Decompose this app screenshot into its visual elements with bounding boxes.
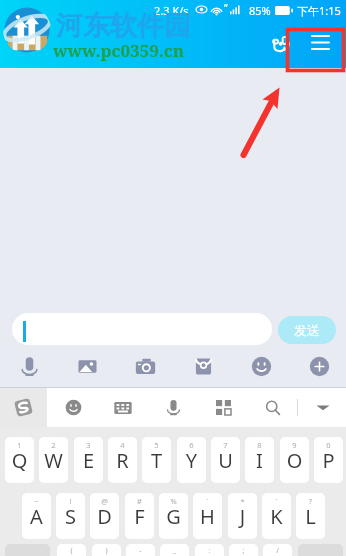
- button[interactable]: 5: [142, 437, 171, 483]
- staticText: ~: [22, 496, 51, 506]
- button[interactable]: *: [228, 493, 257, 539]
- button[interactable]: ´: [262, 493, 291, 539]
- button[interactable]: ?: [296, 493, 325, 539]
- staticText: 2.3 K/s: [154, 3, 189, 18]
- staticText: 4: [108, 440, 137, 450]
- staticText: U: [211, 447, 240, 474]
- button[interactable]: @: [90, 493, 119, 539]
- staticText: D: [90, 503, 119, 530]
- staticText: 0: [314, 440, 343, 450]
- button[interactable]: Emoji: [244, 349, 278, 383]
- staticText: 河东软件园: [56, 9, 191, 43]
- button[interactable]: ;: [229, 544, 258, 556]
- staticText: T: [142, 447, 171, 474]
- button[interactable]: :: [195, 544, 224, 556]
- button[interactable]: ): [92, 544, 121, 556]
- staticText: 7: [211, 440, 240, 450]
- button[interactable]: Sogou input: [0, 388, 47, 427]
- button[interactable]: Keyboard: [101, 388, 145, 427]
- staticText: 3: [74, 440, 103, 450]
- button[interactable]: %: [159, 493, 188, 539]
- staticText: “: [224, 1, 228, 15]
- staticText: :: [195, 546, 224, 556]
- staticText: 9: [280, 440, 309, 450]
- staticText: #: [125, 496, 154, 506]
- staticText: 下午1:15: [297, 3, 341, 18]
- staticText: L: [296, 503, 325, 530]
- button[interactable]: _: [160, 544, 189, 556]
- staticText: G: [159, 503, 188, 530]
- staticText: 2: [39, 440, 68, 450]
- button[interactable]: -: [126, 544, 155, 556]
- button[interactable]: Photo: [70, 349, 104, 383]
- button[interactable]: Apps: [201, 388, 245, 427]
- staticText: ;: [229, 546, 258, 556]
- staticText: J: [228, 503, 257, 530]
- button[interactable]: 发送: [278, 316, 336, 344]
- staticText: %: [159, 496, 188, 506]
- staticText: S: [56, 503, 85, 530]
- staticText: /: [263, 546, 292, 556]
- button[interactable]: Voice message: [12, 349, 46, 383]
- staticText: ): [92, 546, 121, 556]
- button[interactable]: 4: [108, 437, 137, 483]
- button[interactable]: 7: [211, 437, 240, 483]
- staticText: www.pc0359.cn: [53, 39, 185, 62]
- staticText: Y: [177, 447, 206, 474]
- button[interactable]: Gift: [186, 349, 220, 383]
- button[interactable]: 9: [280, 437, 309, 483]
- button[interactable]: Menu: [300, 22, 341, 63]
- button[interactable]: 1: [5, 437, 34, 483]
- button[interactable]: Hide keyboard: [301, 388, 345, 427]
- button[interactable]: (: [57, 544, 86, 556]
- staticText: P: [314, 447, 343, 474]
- staticText: @: [90, 496, 119, 506]
- button[interactable]: 3: [74, 437, 103, 483]
- staticText: 1: [5, 440, 34, 450]
- button[interactable]: /: [263, 544, 292, 556]
- button[interactable]: Message input: [12, 313, 272, 345]
- staticText: E: [74, 447, 103, 474]
- staticText: K: [262, 503, 291, 530]
- button[interactable]: Voice input: [151, 388, 195, 427]
- button[interactable]: #: [125, 493, 154, 539]
- button[interactable]: Emoji: [51, 388, 95, 427]
- button[interactable]: Camera: [128, 349, 162, 383]
- button[interactable]: 0: [314, 437, 343, 483]
- button[interactable]: 6: [177, 437, 206, 483]
- staticText: I: [245, 447, 274, 474]
- staticText: ´: [193, 496, 222, 506]
- staticText: 85%: [249, 3, 271, 18]
- staticText: (: [57, 546, 86, 556]
- staticText: -: [126, 546, 155, 556]
- button[interactable]: ´: [193, 493, 222, 539]
- staticText: W: [39, 447, 68, 474]
- staticText: R: [108, 447, 137, 474]
- staticText: 5: [142, 440, 171, 450]
- button[interactable]: Voice call: [261, 24, 301, 64]
- staticText: *: [228, 496, 257, 506]
- staticText: F: [125, 503, 154, 530]
- button[interactable]: ~: [22, 493, 51, 539]
- button[interactable]: More: [302, 349, 336, 383]
- staticText: Q: [5, 447, 34, 474]
- staticText: ?: [296, 496, 325, 506]
- staticText: O: [280, 447, 309, 474]
- button[interactable]: !: [56, 493, 85, 539]
- staticText: 发送: [294, 322, 320, 338]
- button[interactable]: 2: [39, 437, 68, 483]
- staticText: H: [193, 503, 222, 530]
- button[interactable]: 8: [245, 437, 274, 483]
- staticText: 8: [245, 440, 274, 450]
- staticText: !: [56, 496, 85, 506]
- staticText: A: [22, 503, 51, 530]
- staticText: _: [160, 546, 189, 556]
- staticText: 6: [177, 440, 206, 450]
- staticText: ´: [262, 496, 291, 506]
- button[interactable]: Search: [251, 388, 295, 427]
